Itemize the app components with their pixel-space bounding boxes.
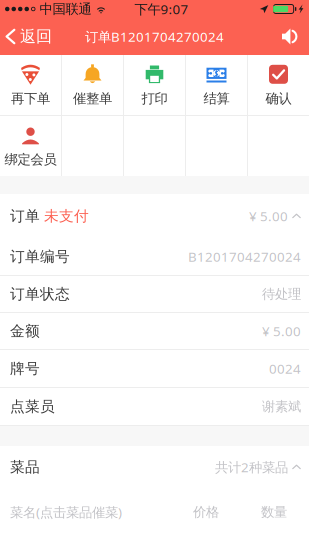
staticText: 打印 bbox=[141, 90, 167, 107]
staticText: 金额 bbox=[10, 322, 40, 340]
staticText: 点菜员 bbox=[10, 397, 55, 415]
staticText: 菜名(点击菜品催菜) bbox=[10, 503, 122, 521]
staticText: ¥ 5.00 bbox=[249, 207, 288, 225]
staticText: 订单B1201704270024 bbox=[85, 28, 224, 45]
staticText: 价格 bbox=[193, 504, 219, 520]
button[interactable]: 订单 bbox=[0, 194, 309, 238]
staticText: 返回 bbox=[20, 27, 52, 46]
staticText: 再下单 bbox=[11, 90, 50, 107]
staticText: 数量 bbox=[261, 504, 287, 520]
staticText: 中国联通 bbox=[35, 1, 91, 17]
button[interactable]: 菜品 bbox=[0, 446, 309, 488]
button[interactable]: 打印 bbox=[124, 55, 185, 115]
button[interactable]: 催整单 bbox=[62, 55, 123, 115]
staticText: 确认 bbox=[265, 90, 291, 107]
button[interactable]: 结算 bbox=[186, 55, 247, 115]
staticText: 0024 bbox=[269, 360, 301, 377]
staticText: 牌号 bbox=[10, 359, 40, 377]
staticText: 未支付 bbox=[40, 207, 89, 225]
staticText: ¥ 5.00 bbox=[262, 322, 301, 340]
button[interactable]: 声音 bbox=[273, 18, 309, 55]
staticText: 菜品 bbox=[10, 458, 40, 476]
staticText: 下午9:07 bbox=[134, 0, 188, 18]
button[interactable]: 返回 bbox=[0, 18, 62, 55]
staticText: 结算 bbox=[203, 90, 229, 107]
staticText: 绑定会员 bbox=[4, 151, 56, 168]
staticText: B1201704270024 bbox=[188, 248, 301, 265]
staticText: 订单编号 bbox=[10, 247, 70, 265]
staticText: 催整单 bbox=[73, 90, 112, 107]
staticText: 待处理 bbox=[262, 286, 301, 302]
button[interactable]: 再下单 bbox=[0, 55, 61, 115]
button[interactable]: 绑定会员 bbox=[0, 116, 61, 176]
staticText: 谢素斌 bbox=[262, 398, 301, 415]
staticText: 共计2种菜品 bbox=[215, 458, 288, 476]
button[interactable]: 确认 bbox=[248, 55, 309, 115]
staticText: 订单状态 bbox=[10, 285, 70, 303]
staticText: 订单 bbox=[10, 207, 40, 225]
